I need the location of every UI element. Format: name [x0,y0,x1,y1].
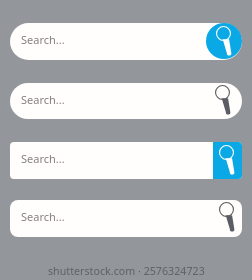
button[interactable]: Search [206,23,242,59]
other: Search [215,85,230,115]
staticText: Search... [21,209,65,224]
button[interactable]: Search... [10,83,242,119]
staticText: Search... [21,151,65,166]
staticText: Search... [21,92,65,107]
button[interactable]: Search... [10,23,242,60]
button[interactable]: Search [213,142,242,179]
staticText: shutterstock.com · 2576324723 [48,264,205,279]
other: Search [219,202,234,232]
staticText: Search... [21,32,65,47]
button[interactable]: Search... [10,200,242,237]
